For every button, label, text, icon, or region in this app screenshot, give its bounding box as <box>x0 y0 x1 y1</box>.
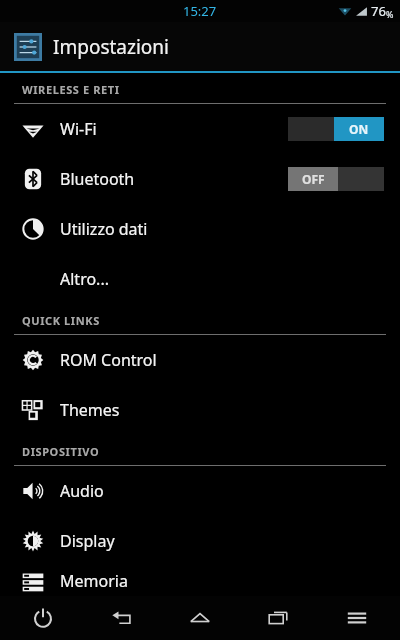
staticText: Utilizzo dati <box>60 218 148 240</box>
staticText: Memoria <box>60 570 128 592</box>
button[interactable]: Bluetooth <box>0 154 400 204</box>
staticText: Display <box>60 530 115 552</box>
button[interactable]: Utilizzo dati <box>0 204 400 254</box>
staticText: 76 <box>371 2 386 20</box>
button[interactable]: Menu <box>322 596 392 640</box>
staticText: Bluetooth <box>60 168 135 190</box>
staticText: OFF <box>302 171 325 187</box>
button[interactable]: Altro... <box>0 254 400 304</box>
staticText: QUICK LINKS <box>22 313 100 328</box>
button[interactable]: ON <box>288 117 384 141</box>
staticText: DISPOSITIVO <box>22 444 100 459</box>
staticText: Altro... <box>60 268 109 290</box>
staticText: WIRELESS E RETI <box>22 82 120 97</box>
button[interactable]: Back <box>87 596 157 640</box>
staticText: % <box>386 8 394 20</box>
button[interactable]: OFF <box>288 167 384 191</box>
staticText: ROM Control <box>60 349 157 371</box>
staticText: ON <box>349 121 369 137</box>
button[interactable]: Display <box>0 516 400 566</box>
staticText: Wi-Fi <box>60 118 97 140</box>
button[interactable]: Power <box>8 596 78 640</box>
staticText: Impostazioni <box>53 34 169 60</box>
staticText: Themes <box>60 399 120 421</box>
button[interactable]: Audio <box>0 466 400 516</box>
button[interactable]: Themes <box>0 385 400 435</box>
button[interactable]: Recent apps <box>243 596 313 640</box>
button[interactable]: Home <box>165 596 235 640</box>
staticText: 15:27 <box>183 2 217 20</box>
button[interactable]: Memoria <box>0 566 400 596</box>
button[interactable]: Wi-Fi <box>0 104 400 154</box>
staticText: Audio <box>60 480 104 502</box>
button[interactable]: ROM Control <box>0 335 400 385</box>
